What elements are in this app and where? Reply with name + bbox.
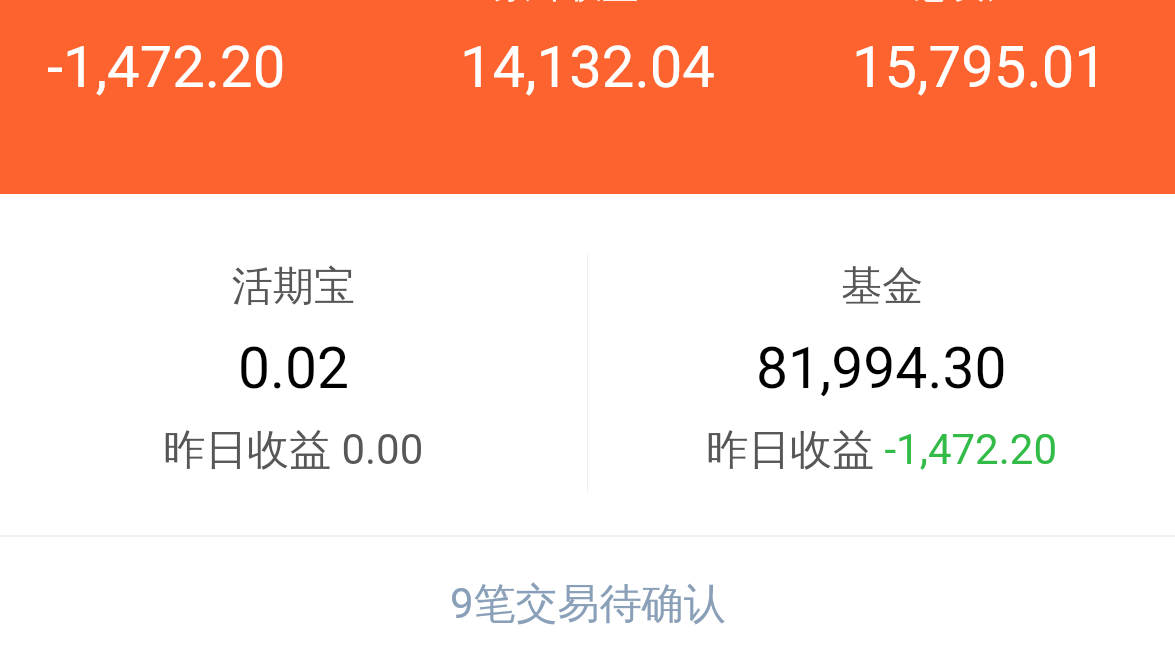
staticText: 累计收益 <box>494 0 638 7</box>
button[interactable]: 活期宝 <box>0 194 587 535</box>
staticText: 81,994.30 <box>756 335 1007 402</box>
staticText: -1,472.20 <box>47 33 286 101</box>
button[interactable]: 总资产 <box>783 0 1175 194</box>
staticText: 9笔交易待确认 <box>450 578 726 631</box>
staticText: 14,132.04 <box>460 33 715 101</box>
staticText: 15,795.01 <box>852 33 1107 101</box>
button[interactable]: 累计收益 <box>391 0 783 194</box>
staticText: 昨日收益 0.00 <box>163 424 424 477</box>
staticText: 总资产 <box>915 0 1023 7</box>
button[interactable]: 9笔交易待确认 <box>0 542 1175 661</box>
staticText: 活期宝 <box>232 261 355 313</box>
staticText: 0.02 <box>238 335 350 402</box>
staticText: 昨日收益 -1,472.20 <box>706 424 1057 477</box>
staticText: 基金 <box>841 261 923 313</box>
button[interactable]: 昨日收益 <box>0 0 391 194</box>
button[interactable]: 基金 <box>588 194 1175 535</box>
